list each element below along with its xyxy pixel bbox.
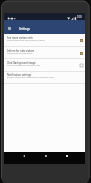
staticText: Show a background image in chat [7, 64, 41, 67]
staticText: Enable sounds and vibration for incoming… [7, 76, 54, 79]
staticText: 100 [77, 15, 82, 19]
button[interactable]: Recent apps [60, 152, 74, 159]
button[interactable]: Inform for new visitors [4, 47, 85, 59]
staticText: Notification on new visitor [7, 52, 33, 55]
button[interactable]: Notification settings [4, 71, 85, 84]
staticText: Chat Background image [7, 61, 36, 64]
staticText: Notification settings [7, 73, 32, 76]
button[interactable]: Open navigation menu [6, 24, 13, 32]
staticText: Show online time and number of visits [7, 39, 45, 42]
staticText: Inform for new visitors [7, 49, 35, 52]
button[interactable]: Home [39, 152, 53, 159]
button[interactable]: Back [17, 152, 31, 159]
staticText: See more visitors info [7, 36, 33, 39]
button[interactable]: Chat Background image [4, 59, 85, 72]
staticText: Settings [19, 27, 30, 31]
button[interactable]: See more visitors info [4, 34, 85, 47]
